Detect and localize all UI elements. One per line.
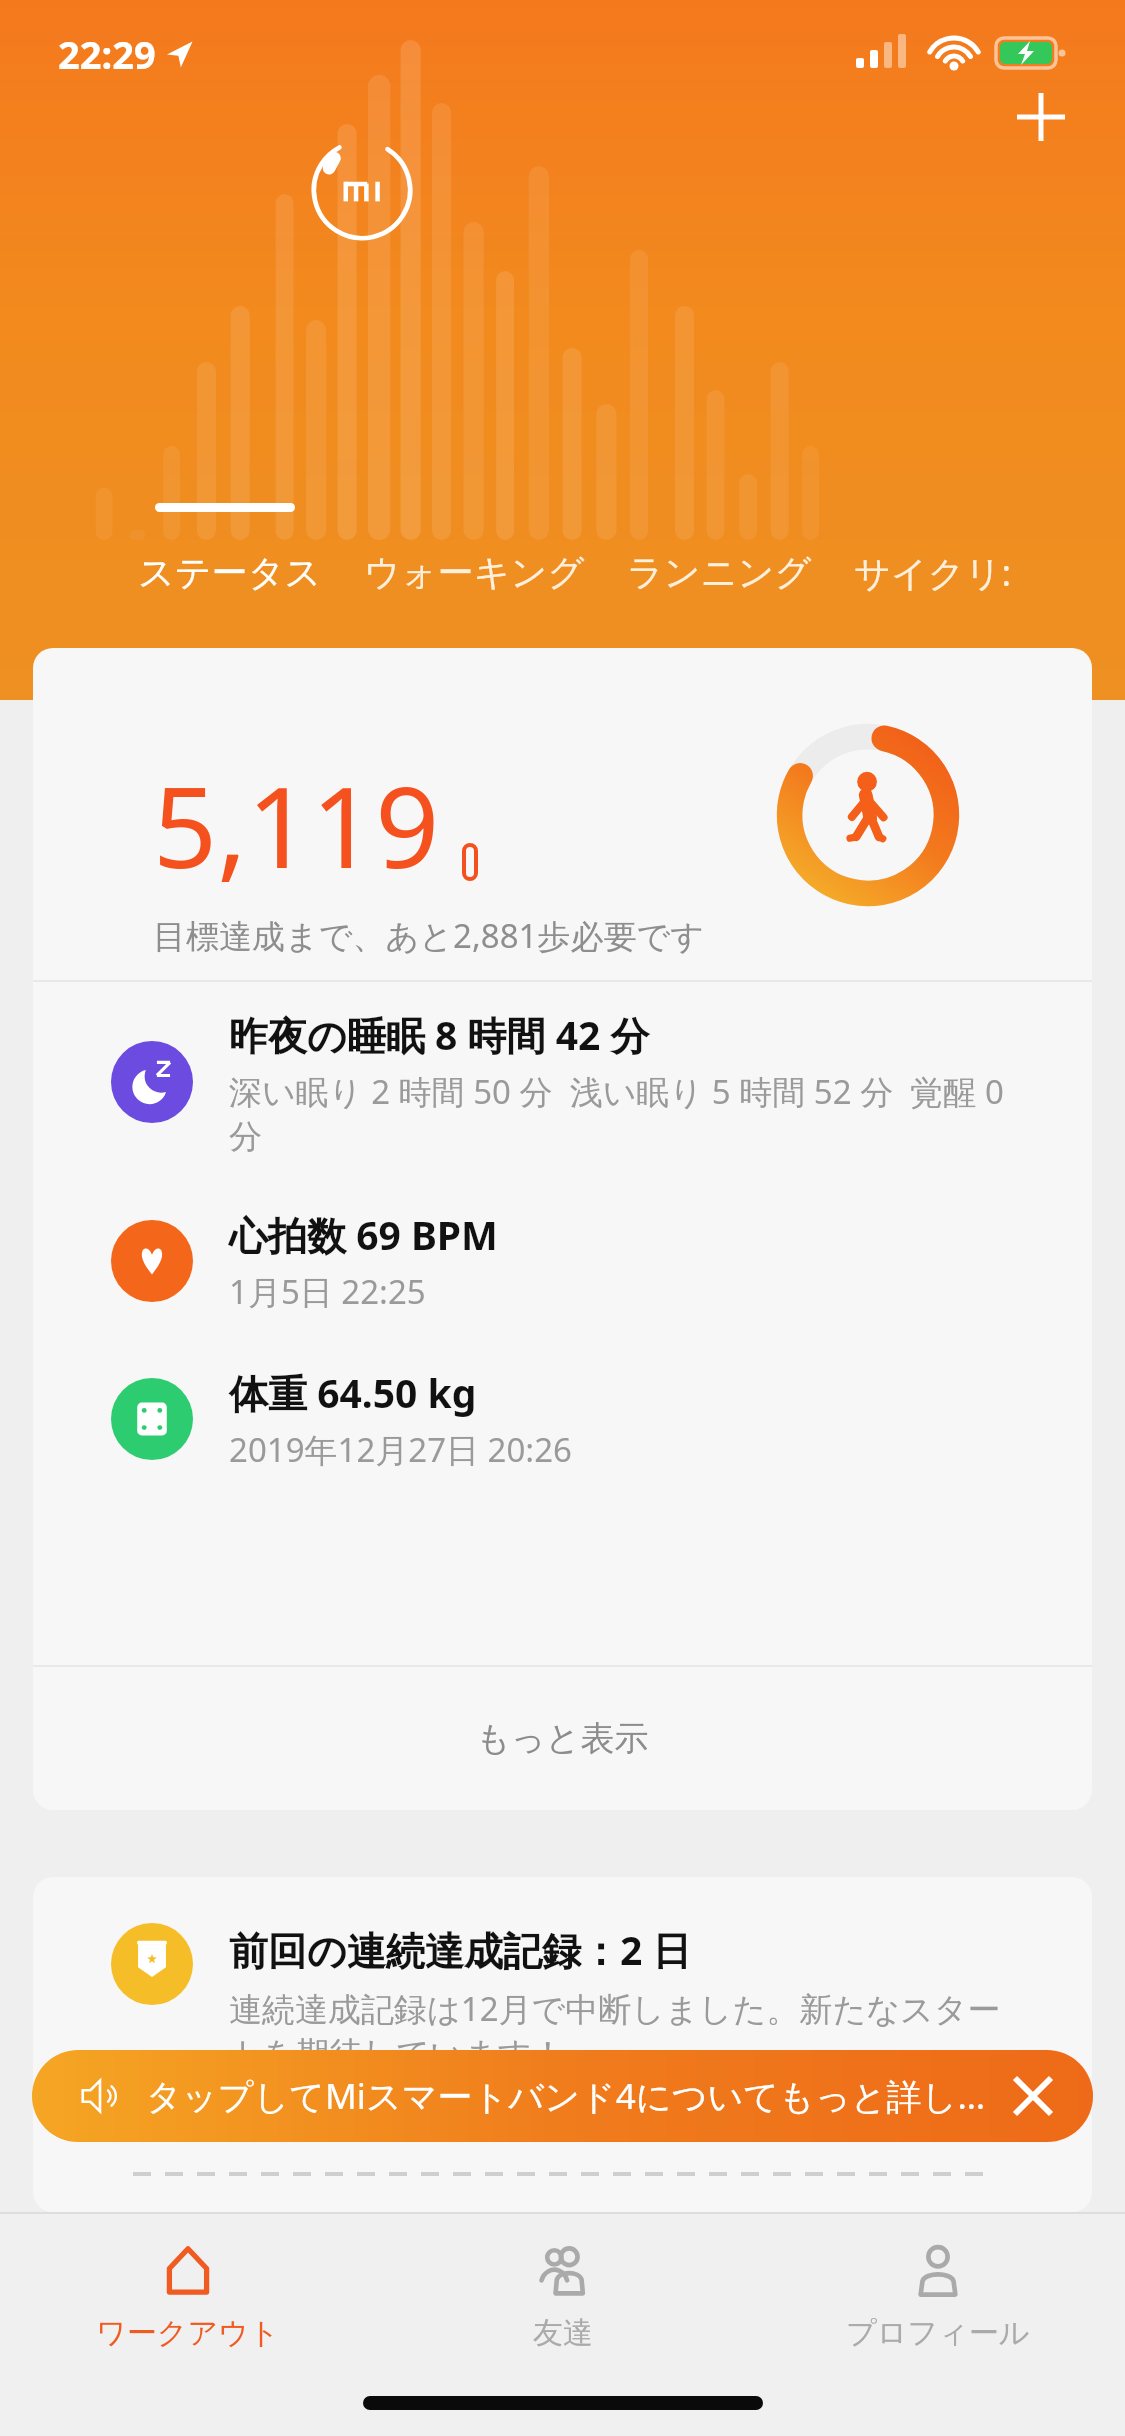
staticText: ランニング xyxy=(627,550,812,595)
staticText: 前回の連続達成記録：2 日 xyxy=(229,1923,692,1976)
staticText: プロフィール xyxy=(846,2314,1030,2352)
button[interactable]: 昨夜の睡眠 8 時間 42 分 xyxy=(33,982,1092,1182)
button[interactable]: プロフィール xyxy=(750,2214,1125,2382)
staticText: 22:29 xyxy=(58,28,156,80)
staticText: 9,000 xyxy=(229,2090,314,2135)
button[interactable]: Dismiss xyxy=(987,2050,1079,2142)
button[interactable]: Add device xyxy=(1002,78,1080,156)
staticText: ステータス xyxy=(138,550,322,595)
button[interactable]: ランニング xyxy=(619,540,820,605)
staticText: タップしてMiスマートバンド4についてもっと詳し… xyxy=(146,2072,986,2120)
staticText: 5,119 xyxy=(153,748,440,901)
staticText: ワークアウト xyxy=(96,2314,280,2352)
button[interactable]: 心拍数 69 BPM xyxy=(33,1182,1092,1340)
button[interactable]: もっと表示 xyxy=(33,1667,1092,1810)
staticText: 2019年12月27日 20:26 xyxy=(229,1427,572,1472)
staticText: 心拍数 69 BPM xyxy=(229,1208,498,1261)
staticText: 友達 xyxy=(533,2314,593,2352)
button[interactable]: ステータス xyxy=(130,540,330,605)
button[interactable]: ウォーキング xyxy=(356,540,593,605)
staticText: 体重 64.50 kg xyxy=(229,1366,477,1419)
staticText: 昨夜の睡眠 8 時間 42 分 xyxy=(229,1008,650,1061)
button[interactable]: サイクリ: xyxy=(846,538,1020,607)
button[interactable]: ワークアウト xyxy=(0,2214,375,2382)
button[interactable]: タップしてMiスマートバンド4についてもっと詳し… xyxy=(32,2050,1093,2142)
button[interactable]: 5,119 xyxy=(33,648,1092,980)
staticText: 連続達成記録は12月で中断しました。新たなスタートを期待しています！ xyxy=(229,1986,1032,2074)
staticText: もっと表示 xyxy=(476,1717,649,1760)
button[interactable]: 友達 xyxy=(375,2214,750,2382)
button[interactable]: 体重 64.50 kg xyxy=(33,1340,1092,1498)
button[interactable]: 前回の連続達成記録：2 日 xyxy=(33,1877,1092,2212)
staticText: 目標達成まで、あと2,881歩必要です xyxy=(153,913,704,958)
staticText: ウォーキング xyxy=(364,550,585,595)
staticText: 深い眠り 2 時間 50 分 浅い眠り 5 時間 52 分 覚醒 0 分 xyxy=(229,1069,1036,1157)
staticText: サイクリ: xyxy=(854,548,1012,597)
staticText: 1月5日 22:25 xyxy=(229,1269,426,1314)
